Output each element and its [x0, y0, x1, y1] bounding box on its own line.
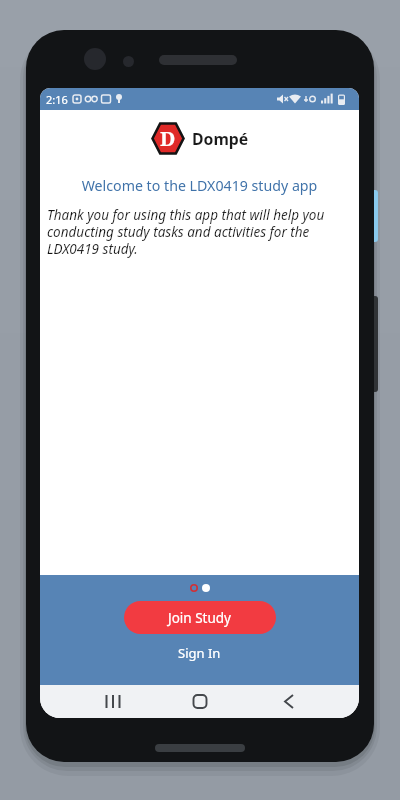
staticText: D — [160, 125, 176, 152]
button[interactable] — [273, 685, 305, 718]
staticText: Dompé — [192, 128, 249, 150]
button[interactable] — [184, 685, 216, 718]
button[interactable] — [97, 685, 129, 718]
staticText: Sign In — [178, 644, 221, 662]
button[interactable]: Sign In — [178, 644, 221, 662]
button[interactable]: Join Study — [124, 601, 276, 634]
staticText: Welcome to the LDX0419 study app — [40, 176, 359, 195]
staticText: Thank you for using this app that will h… — [47, 206, 352, 258]
staticText: Join Study — [168, 609, 232, 627]
staticText: 2:16 — [46, 92, 68, 107]
